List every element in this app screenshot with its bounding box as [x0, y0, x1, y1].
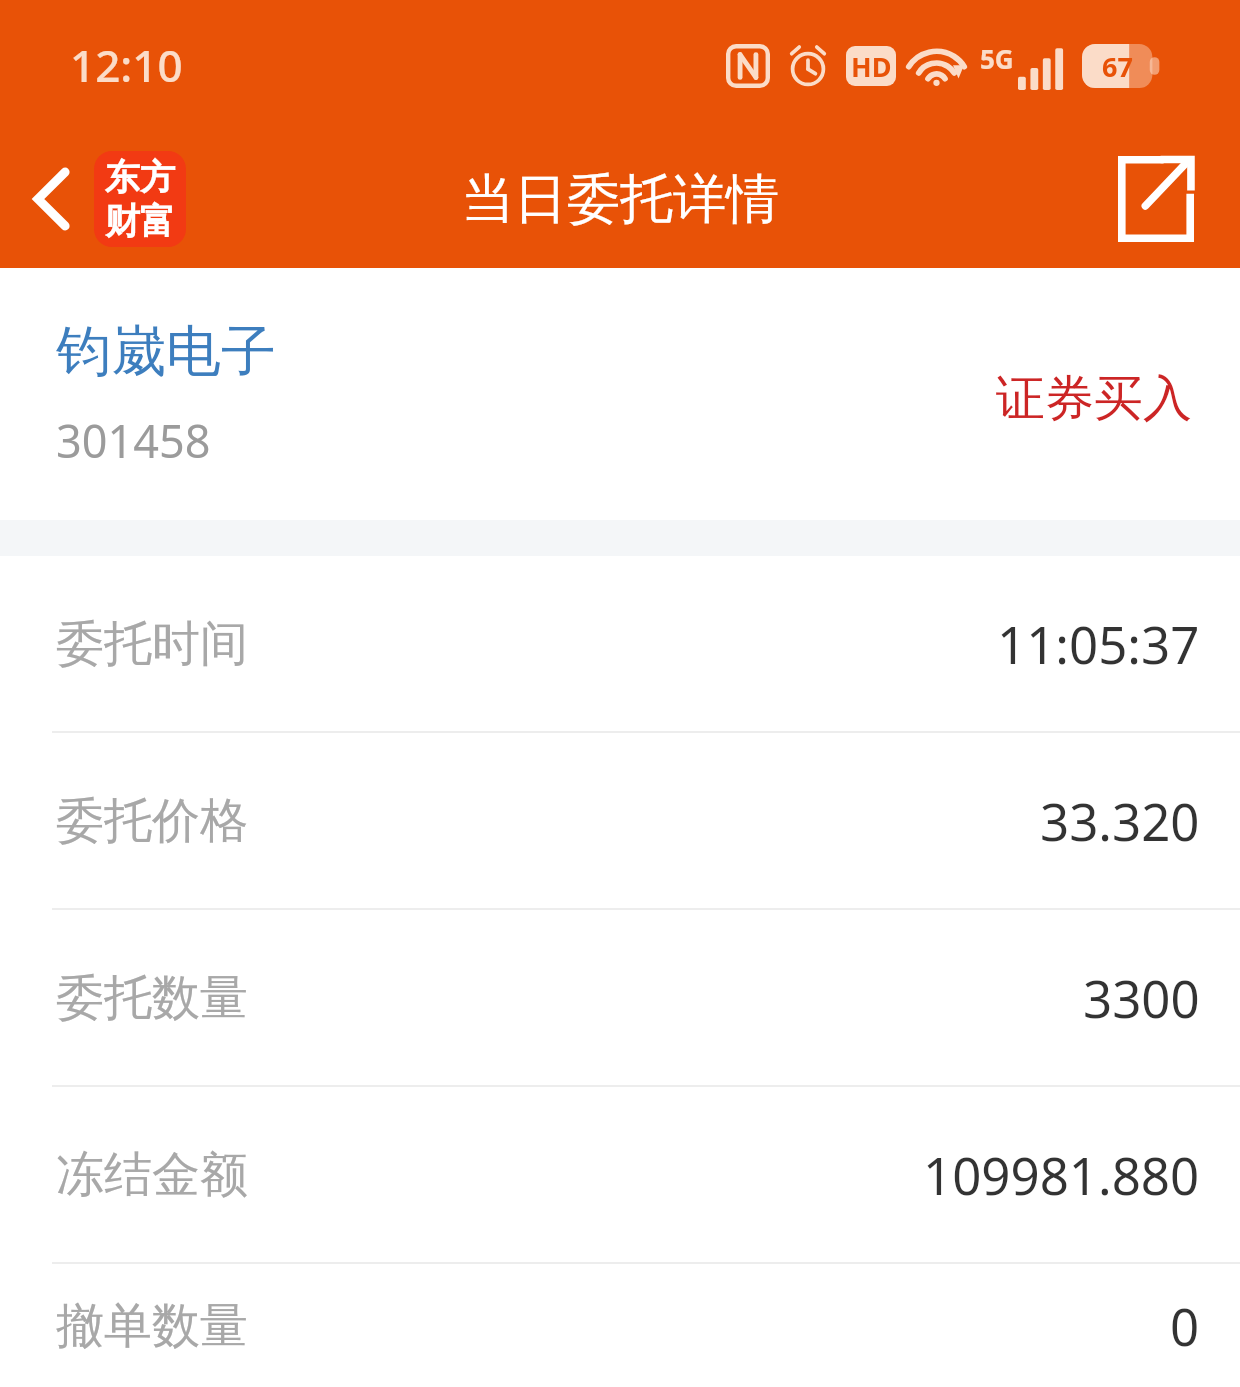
staticText: 5G: [980, 41, 1014, 76]
staticText: HD: [851, 48, 892, 85]
staticText: 撤单数量: [56, 1296, 248, 1356]
staticText: 3300: [1083, 963, 1200, 1032]
button[interactable]: 委托价格: [0, 733, 1240, 908]
staticText: 委托价格: [56, 791, 248, 851]
staticText: 委托时间: [56, 614, 248, 674]
staticText: 财富: [105, 199, 175, 243]
staticText: 12:10: [70, 35, 183, 95]
button[interactable]: 委托时间: [0, 556, 1240, 731]
staticText: 证券买入: [996, 368, 1192, 430]
button[interactable]: 冻结金额: [0, 1087, 1240, 1262]
staticText: 109981.880: [923, 1140, 1200, 1209]
staticText: 委托数量: [56, 968, 248, 1028]
staticText: 当日委托详情: [461, 166, 779, 233]
button[interactable]: Share: [1108, 146, 1204, 252]
staticText: 67: [1102, 48, 1133, 85]
staticText: 东方: [105, 155, 175, 199]
button[interactable]: Back: [16, 139, 200, 259]
staticText: 33.320: [1040, 786, 1200, 855]
staticText: 冻结金额: [56, 1145, 248, 1205]
staticText: 11:05:37: [997, 609, 1200, 678]
staticText: 0: [1170, 1291, 1200, 1360]
staticText: 301458: [56, 410, 211, 471]
button[interactable]: 撤单数量: [0, 1264, 1240, 1387]
staticText: 钧崴电子: [56, 317, 276, 386]
button[interactable]: 委托数量: [0, 910, 1240, 1085]
